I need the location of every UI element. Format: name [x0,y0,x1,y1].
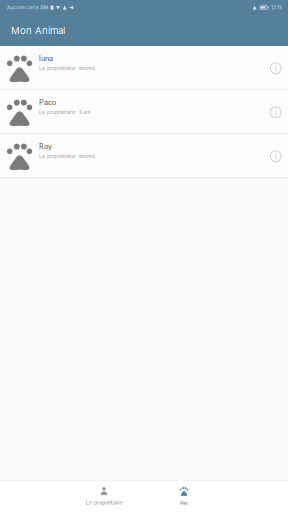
staticText: i [275,107,277,117]
staticText: Le propriétaire: Sam [39,109,91,115]
staticText: Pet [180,500,188,506]
button[interactable]: Roy [0,134,288,177]
staticText: Le propriétaire [86,499,122,506]
staticText: Le propriétaire: emma [39,65,95,71]
staticText: 12:15 [271,5,282,10]
staticText: Mon Animal [11,25,65,36]
staticText: Paco [39,98,56,107]
button[interactable]: Pet [144,481,224,512]
button[interactable]: Le propriétaire [64,481,144,512]
staticText: i [275,63,277,73]
staticText: Aucune carte SIM [7,5,48,10]
staticText: Le propriétaire: emma [39,153,95,159]
button[interactable]: Paco [0,90,288,133]
button[interactable]: luna [0,46,288,89]
staticText: Roy [39,142,52,151]
staticText: luna [39,54,53,63]
staticText: i [275,151,277,161]
